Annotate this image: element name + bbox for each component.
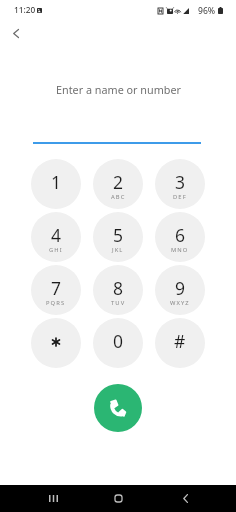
button[interactable]: 1 [31,159,81,209]
button[interactable]: Call [94,384,142,432]
staticText: 9 [175,276,186,300]
staticText: 96% [198,5,216,17]
staticText: TUV [111,299,126,307]
staticText: 7 [51,276,62,300]
button[interactable] [31,318,81,368]
button[interactable]: 4 [31,212,81,262]
button[interactable]: 8 [93,265,143,315]
staticText: 0 [113,329,124,353]
button[interactable]: 7 [31,265,81,315]
staticText: 4 [51,223,62,247]
button[interactable]: Back [4,22,27,45]
staticText: MNO [171,246,189,254]
staticText: JKL [112,246,124,254]
staticText: ABC [111,193,126,201]
staticText: PQRS [46,299,66,307]
staticText: 3 [175,170,186,194]
staticText: 6 [175,223,186,247]
staticText: DEF [173,193,187,201]
button[interactable]: 0 [93,318,143,368]
staticText: 11:20 [14,4,36,15]
staticText: 2 [113,170,124,194]
staticText: 1 [51,170,62,194]
staticText: WXYZ [170,299,190,307]
staticText: # [174,329,186,353]
staticText: GHI [49,246,63,254]
button[interactable]: 2 [93,159,143,209]
staticText: 8 [113,276,124,300]
button[interactable]: # [155,318,205,368]
button[interactable]: 6 [155,212,205,262]
staticText: Enter a name or number [56,82,181,97]
staticText: 5 [113,223,124,247]
button[interactable]: 9 [155,265,205,315]
button[interactable]: Recent apps [35,488,71,509]
button[interactable]: 3 [155,159,205,209]
button[interactable]: 5 [93,212,143,262]
button[interactable]: Back [167,488,203,509]
button[interactable]: Home [100,488,136,509]
